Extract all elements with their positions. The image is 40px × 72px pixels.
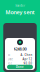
staticText: $0.00 <box>23 62 32 65</box>
staticText: Money sent <box>5 8 34 16</box>
staticText: To <box>7 53 10 57</box>
staticText: Date <box>7 57 13 61</box>
button[interactable]: Done <box>7 65 33 69</box>
staticText: Fee <box>7 62 12 65</box>
staticText: Done <box>16 65 24 69</box>
staticText: Transfer <box>15 4 25 7</box>
staticText: $248.00 <box>13 46 26 51</box>
staticText: Apr 12 <box>22 57 32 61</box>
staticText: A. Chen <box>20 53 32 57</box>
